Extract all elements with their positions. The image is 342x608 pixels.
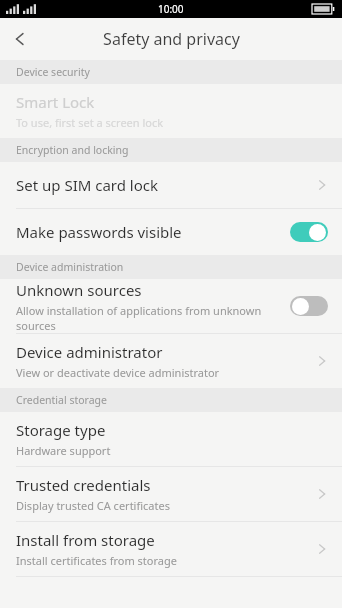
staticText: Safety and privacy	[103, 28, 240, 50]
button[interactable]: Set up SIM card lock	[0, 162, 342, 208]
staticText: Encryption and locking	[16, 143, 129, 157]
staticText: Unknown sources	[16, 280, 142, 300]
button[interactable]: Storage type	[0, 412, 342, 466]
button[interactable]: Smart Lock	[0, 84, 342, 138]
staticText: Allow installation of applications from …	[16, 303, 290, 333]
button[interactable]: Unknown sources	[0, 279, 342, 333]
staticText: Display trusted CA certificates	[16, 498, 170, 513]
staticText: Install certificates from storage	[16, 553, 177, 568]
staticText: Device administration	[16, 260, 124, 274]
staticText: Make passwords visible	[16, 222, 182, 242]
staticText: Smart Lock	[16, 92, 95, 112]
button[interactable]: Make passwords visible	[0, 209, 342, 255]
staticText: Device security	[16, 65, 90, 79]
button[interactable]: Install from storage	[0, 522, 342, 576]
staticText: Trusted credentials	[16, 475, 151, 495]
button[interactable]: Trusted credentials	[0, 467, 342, 521]
staticText: Hardware support	[16, 443, 111, 458]
staticText: Device administrator	[16, 342, 163, 362]
other: Toggle	[290, 296, 328, 316]
staticText: Set up SIM card lock	[16, 175, 159, 195]
staticText: Install from storage	[16, 530, 155, 550]
staticText: Storage type	[16, 420, 106, 440]
button[interactable]: Device administrator	[0, 334, 342, 388]
staticText: To use, first set a screen lock	[16, 115, 164, 130]
staticText: View or deactivate device administrator	[16, 365, 220, 380]
staticText: Credential storage	[16, 393, 107, 407]
other: Toggle	[290, 222, 328, 242]
staticText: 10:00	[158, 2, 184, 16]
button[interactable]: Back	[0, 18, 42, 60]
